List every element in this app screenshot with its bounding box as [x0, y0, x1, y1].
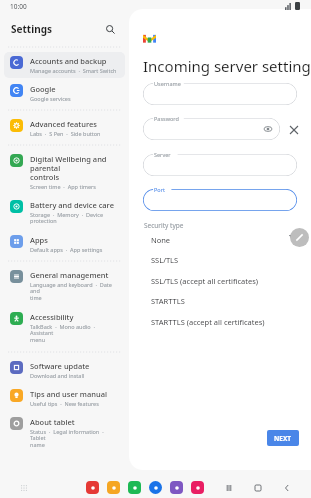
button[interactable]: Phone — [128, 481, 141, 494]
button[interactable]: Apps — [4, 231, 125, 257]
staticText: SSL/TLS (accept all certificates) — [151, 276, 258, 286]
staticText: Apps — [30, 235, 48, 245]
staticText: Google — [30, 84, 56, 94]
staticText: Storage · Memory · Device protection — [30, 211, 104, 225]
button[interactable]: General management — [4, 266, 125, 306]
button[interactable]: Camera — [191, 481, 204, 494]
staticText: 10:00 — [10, 2, 27, 11]
button[interactable]: STARTTLS (accept all certificates) — [143, 312, 287, 332]
button[interactable]: STARTTLS — [143, 291, 287, 311]
button[interactable]: Clear — [285, 121, 303, 139]
staticText: Server — [154, 151, 171, 158]
staticText: TalkBack · Mono audio · Assistant menu — [30, 323, 120, 344]
button[interactable]: Messages — [149, 481, 162, 494]
button[interactable]: Advanced features — [4, 115, 125, 141]
button[interactable]: Search — [102, 21, 118, 37]
button[interactable]: Battery and device care — [4, 196, 125, 229]
staticText: Status · Legal information · Tablet name — [30, 428, 120, 449]
button[interactable]: SSL/TLS (accept all certificates) — [143, 271, 287, 291]
staticText: Screen time · App timers — [30, 183, 96, 190]
staticText: Software update — [30, 361, 90, 371]
staticText: Username — [154, 80, 181, 87]
staticText: Accessibility — [30, 312, 74, 322]
staticText: Password — [154, 115, 179, 122]
staticText: Language and keyboard · Date and time — [30, 281, 120, 302]
staticText: None — [151, 235, 171, 245]
staticText: Accounts and backup — [30, 56, 107, 66]
button[interactable]: Username — [143, 79, 297, 105]
staticText: General management — [30, 270, 109, 280]
button[interactable]: Server — [143, 150, 297, 176]
button[interactable]: Internet — [170, 481, 183, 494]
staticText: Default apps · App settings — [30, 246, 103, 253]
button[interactable]: Show password — [262, 123, 273, 134]
staticText: About tablet — [30, 417, 75, 427]
staticText: Security type — [144, 221, 184, 230]
staticText: STARTTLS — [151, 296, 185, 306]
button[interactable]: None — [143, 230, 287, 250]
button[interactable]: Accounts and backup — [4, 52, 125, 78]
button[interactable]: Tips and user manual — [4, 385, 125, 411]
button[interactable]: Recents — [224, 483, 233, 492]
staticText: Tips and user manual — [30, 389, 107, 399]
button[interactable]: Software update — [4, 357, 125, 383]
button[interactable]: Back — [282, 483, 291, 492]
staticText: Advanced features — [30, 119, 97, 129]
button[interactable]: Password — [143, 114, 280, 140]
button[interactable]: Files — [107, 481, 120, 494]
button[interactable]: Accessibility — [4, 308, 125, 348]
button[interactable]: Home — [253, 483, 262, 492]
staticText: Download and install — [30, 372, 85, 379]
staticText: NEXT — [274, 434, 292, 443]
staticText: Battery and device care — [30, 200, 114, 210]
staticText: Google services — [30, 95, 71, 102]
button[interactable]: SSL/TLS — [143, 250, 287, 270]
button[interactable]: Flipboard — [86, 481, 99, 494]
button[interactable]: About tablet — [4, 413, 125, 453]
button[interactable]: Edit — [290, 228, 309, 247]
staticText: SSL/TLS — [151, 255, 179, 265]
button[interactable]: All apps — [19, 483, 28, 492]
staticText: STARTTLS (accept all certificates) — [151, 317, 265, 327]
staticText: Settings — [11, 22, 52, 36]
button[interactable]: Port — [143, 185, 297, 211]
staticText: Incoming server settings — [143, 56, 311, 76]
staticText: Digital Wellbeing and parental controls — [30, 154, 120, 182]
button[interactable]: NEXT — [267, 430, 299, 446]
button[interactable]: Digital Wellbeing and parental controls — [4, 150, 125, 194]
button[interactable]: Google — [4, 80, 125, 106]
staticText: Labs · S Pen · Side button — [30, 130, 101, 137]
staticText: Useful tips · New features — [30, 400, 99, 407]
staticText: Port — [154, 186, 165, 193]
staticText: Manage accounts · Smart Switch — [30, 67, 117, 74]
